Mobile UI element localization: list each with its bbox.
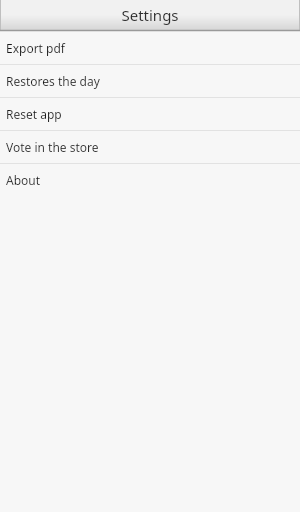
button[interactable]: Restores the day	[0, 65, 300, 97]
button[interactable]: About	[0, 164, 300, 196]
staticText: Settings	[0, 5, 300, 25]
button[interactable]: Export pdf	[0, 32, 300, 64]
staticText: Reset app	[6, 106, 62, 122]
staticText: Restores the day	[6, 73, 100, 89]
staticText: Export pdf	[6, 40, 65, 56]
staticText: Vote in the store	[6, 139, 99, 155]
button[interactable]: Vote in the store	[0, 131, 300, 163]
staticText: About	[6, 172, 41, 188]
button[interactable]: Reset app	[0, 98, 300, 130]
